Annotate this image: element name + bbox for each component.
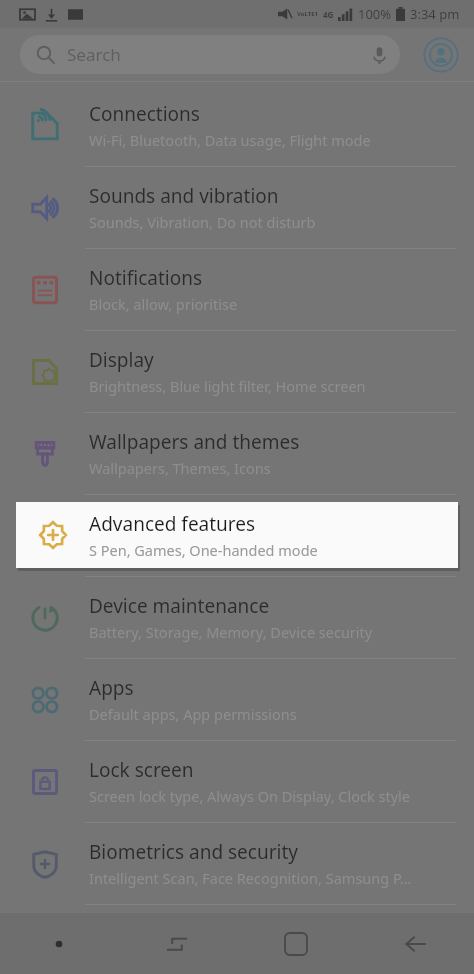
button[interactable]: Wallpapers and themes: [0, 413, 474, 494]
button[interactable]: Connections: [0, 85, 474, 166]
staticText: Brightness, Blue light filter, Home scre…: [89, 376, 366, 396]
staticText: Apps: [89, 675, 134, 701]
staticText: Search: [67, 43, 121, 66]
button[interactable]: Device maintenance: [0, 577, 474, 658]
button[interactable]: Voice search: [362, 38, 396, 72]
button[interactable]: Lock screen: [0, 741, 474, 822]
staticText: Intelligent Scan, Face Recognition, Sams…: [89, 868, 412, 888]
button[interactable]: Recents: [118, 913, 236, 974]
button[interactable]: Display: [0, 331, 474, 412]
staticText: Wallpapers and themes: [89, 429, 300, 455]
staticText: 3:34 pm: [410, 5, 460, 23]
staticText: 4G: [323, 9, 334, 20]
staticText: Display: [89, 347, 154, 373]
button[interactable]: Samsung account: [422, 36, 460, 74]
button[interactable]: Biometrics and security: [0, 823, 474, 904]
button[interactable]: Back: [355, 913, 474, 974]
button[interactable]: Apps: [0, 659, 474, 740]
staticText: Biometrics and security: [89, 839, 299, 865]
staticText: S Pen, Games, One-handed mode: [89, 540, 318, 560]
button[interactable]: Notifications: [0, 249, 474, 330]
button[interactable]: Menu: [0, 913, 118, 974]
staticText: VoLTE1: [297, 10, 319, 18]
staticText: 100%: [358, 5, 392, 23]
staticText: Battery, Storage, Memory, Device securit…: [89, 622, 373, 642]
staticText: Notifications: [89, 265, 203, 291]
staticText: Screen lock type, Always On Display, Clo…: [89, 786, 410, 806]
staticText: Wallpapers, Themes, Icons: [89, 458, 271, 478]
staticText: Lock screen: [89, 757, 194, 783]
button[interactable]: Advanced features: [16, 502, 458, 568]
staticText: Default apps, App permissions: [89, 704, 297, 724]
staticText: Connections: [89, 101, 200, 127]
staticText: Wi-Fi, Bluetooth, Data usage, Flight mod…: [89, 130, 371, 150]
staticText: Device maintenance: [89, 593, 270, 619]
staticText: Block, allow, prioritise: [89, 294, 238, 314]
staticText: Advanced features: [89, 511, 256, 537]
staticText: Sounds and vibration: [89, 183, 279, 209]
button[interactable]: Sounds and vibration: [0, 167, 474, 248]
staticText: Sounds, Vibration, Do not disturb: [89, 212, 316, 232]
button[interactable]: Home: [236, 913, 355, 974]
button[interactable]: Search: [20, 35, 400, 74]
